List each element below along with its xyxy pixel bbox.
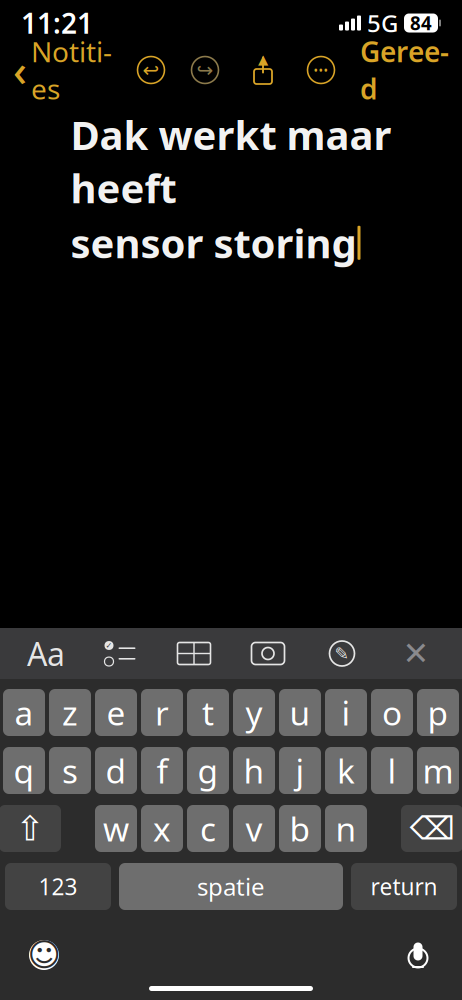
staticText: n — [335, 806, 356, 851]
staticText: t — [202, 690, 214, 735]
button[interactable]: ‹ — [1, 48, 124, 92]
button[interactable]: 123 — [5, 863, 111, 910]
staticText: l — [387, 748, 396, 793]
staticText: 84 — [410, 11, 432, 35]
staticText: g — [197, 748, 218, 793]
staticText: i — [341, 690, 350, 735]
staticText: 11:21 — [21, 4, 93, 42]
staticText: ↩ — [142, 59, 159, 81]
staticText: return — [370, 871, 437, 901]
staticText: ✓ — [105, 641, 112, 650]
button[interactable]: Redo — [189, 54, 221, 86]
button[interactable]: spatie — [119, 863, 343, 910]
staticText: ✎ — [334, 644, 349, 663]
button[interactable]: a — [3, 689, 45, 736]
button[interactable]: p — [417, 689, 459, 736]
button[interactable]: b — [279, 805, 321, 852]
button[interactable]: q — [3, 747, 45, 794]
staticText: y — [245, 690, 262, 735]
staticText: 123 — [38, 871, 77, 901]
staticText: ⌫ — [409, 810, 454, 847]
button[interactable]: Camera — [245, 633, 291, 673]
staticText: s — [62, 748, 78, 793]
staticText: e — [106, 690, 125, 735]
button[interactable]: Dictate — [395, 932, 441, 978]
staticText: r — [155, 690, 169, 735]
button[interactable]: w — [95, 805, 137, 852]
button[interactable]: t — [187, 689, 229, 736]
staticText: ••• — [313, 62, 328, 78]
button[interactable]: More — [305, 54, 337, 86]
staticText: f — [156, 748, 167, 793]
staticText: spatie — [197, 871, 265, 902]
staticText: Notities — [31, 33, 112, 107]
button[interactable]: Emoji — [21, 932, 67, 978]
staticText: h — [243, 748, 264, 793]
button[interactable]: Text format — [23, 633, 69, 673]
staticText: a — [14, 690, 33, 735]
staticText: ▲ — [258, 52, 268, 67]
staticText: Gereed — [360, 33, 449, 107]
staticText: ↪ — [196, 59, 213, 81]
button[interactable]: z — [49, 689, 91, 736]
staticText: j — [295, 748, 304, 793]
staticText: b — [289, 806, 310, 851]
button[interactable]: d — [95, 747, 137, 794]
button[interactable]: x — [141, 805, 183, 852]
button[interactable]: h — [233, 747, 275, 794]
button[interactable]: Undo — [135, 54, 167, 86]
button[interactable]: Hide keyboard — [393, 633, 439, 673]
staticText: ☺ — [27, 937, 60, 973]
button[interactable]: Gereed — [348, 48, 461, 92]
button[interactable]: r — [141, 689, 183, 736]
button[interactable]: Checklist — [97, 633, 143, 673]
staticText: ‹ — [13, 42, 27, 98]
staticText: u — [289, 690, 310, 735]
button[interactable]: y — [233, 689, 275, 736]
button[interactable]: j — [279, 747, 321, 794]
button[interactable]: i — [325, 689, 367, 736]
staticText: ✕ — [402, 635, 429, 672]
staticText: q — [13, 748, 34, 793]
staticText: 5G — [367, 7, 398, 39]
button[interactable]: f — [141, 747, 183, 794]
staticText: ⇧ — [15, 809, 44, 848]
staticText: c — [200, 806, 216, 851]
button[interactable]: s — [49, 747, 91, 794]
button[interactable]: Table — [171, 633, 217, 673]
staticText: o — [382, 690, 402, 735]
staticText: x — [153, 806, 171, 851]
staticText: v — [245, 806, 262, 851]
button[interactable]: v — [233, 805, 275, 852]
button[interactable]: k — [325, 747, 367, 794]
button[interactable]: u — [279, 689, 321, 736]
button[interactable]: return — [351, 863, 457, 910]
button[interactable]: m — [417, 747, 459, 794]
button[interactable]: o — [371, 689, 413, 736]
staticText: w — [103, 806, 129, 851]
staticText: p — [427, 690, 448, 735]
staticText: Aa — [27, 632, 65, 675]
button[interactable]: g — [187, 747, 229, 794]
staticText: Dak werkt maar heeft — [70, 108, 391, 214]
button[interactable]: c — [187, 805, 229, 852]
button[interactable]: Markup — [319, 633, 365, 673]
button[interactable]: Share — [247, 53, 279, 87]
button[interactable]: e — [95, 689, 137, 736]
staticText: m — [422, 748, 453, 793]
button[interactable]: l — [371, 747, 413, 794]
staticText: k — [337, 748, 355, 793]
staticText: sensor storing — [70, 216, 356, 269]
staticText: z — [62, 690, 78, 735]
button[interactable]: Delete — [401, 805, 462, 852]
button[interactable]: n — [325, 805, 367, 852]
button[interactable]: Shift — [0, 805, 61, 852]
staticText: d — [105, 748, 126, 793]
